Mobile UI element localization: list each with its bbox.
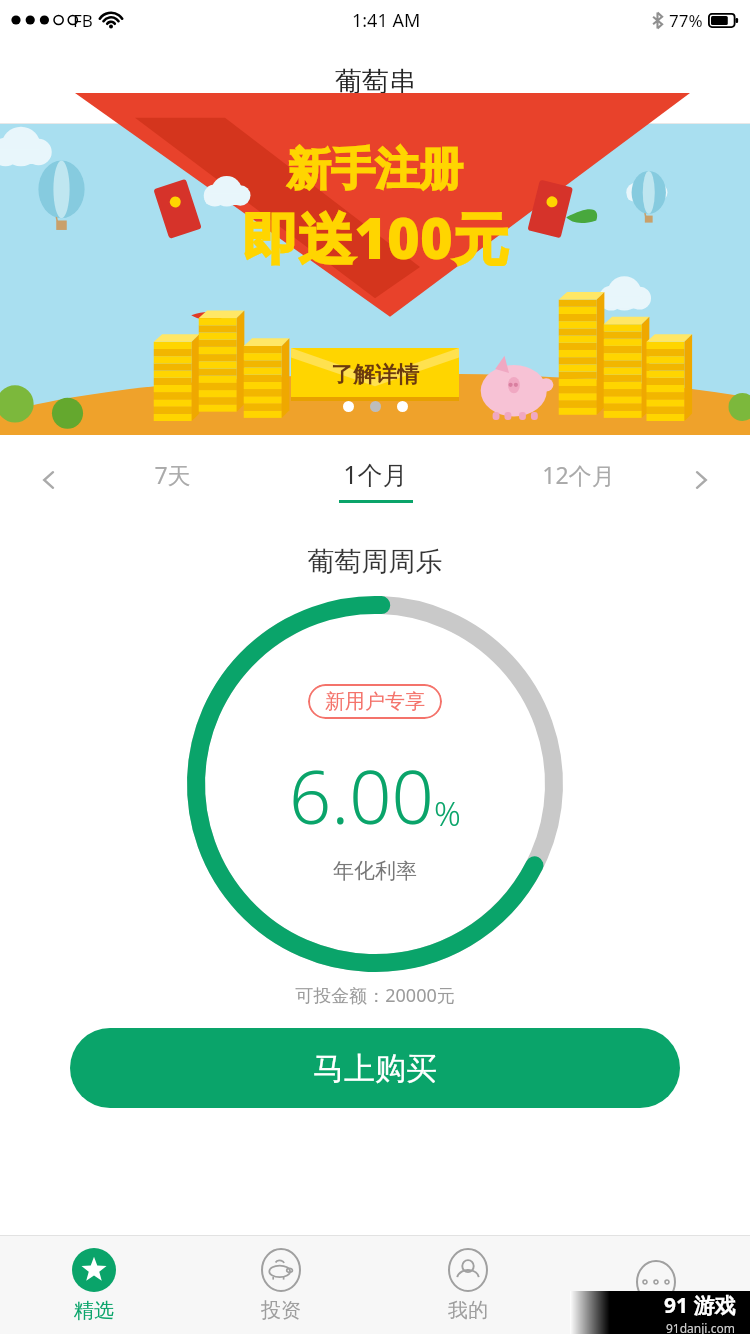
- button[interactable]: 投资: [187, 1236, 374, 1334]
- button[interactable]: More: [562, 1236, 750, 1334]
- staticText: 可投金额：20000元: [0, 983, 750, 1008]
- button[interactable]: 1个月: [274, 457, 477, 503]
- button[interactable]: Next: [680, 459, 722, 501]
- staticText: 葡萄串: [335, 65, 416, 99]
- staticText: 7天: [154, 459, 191, 490]
- staticText: 12个月: [542, 459, 615, 490]
- staticText: 6.00: [289, 745, 434, 846]
- button[interactable]: 7天: [70, 459, 274, 502]
- staticText: 年化利率: [333, 858, 417, 884]
- button[interactable]: 我的: [374, 1236, 562, 1334]
- button[interactable]: 12个月: [477, 459, 680, 502]
- staticText: 1:41 AM: [352, 8, 421, 33]
- staticText: 马上购买: [313, 1049, 437, 1088]
- staticText: FB: [73, 9, 93, 32]
- staticText: 投资: [261, 1298, 301, 1323]
- button[interactable]: Previous: [28, 459, 70, 501]
- button[interactable]: 马上购买: [70, 1028, 680, 1108]
- staticText: 77%: [669, 9, 703, 32]
- staticText: 新手注册: [287, 142, 463, 197]
- staticText: 91danji.com: [666, 1320, 735, 1334]
- staticText: 91 游戏: [664, 1291, 736, 1320]
- staticText: 我的: [448, 1298, 488, 1323]
- staticText: 新用户专享: [325, 689, 425, 714]
- staticText: 即送100元: [242, 199, 509, 275]
- staticText: %: [434, 791, 461, 836]
- staticText: 葡萄周周乐: [0, 545, 750, 579]
- button[interactable]: 了解详情: [291, 348, 459, 401]
- button[interactable]: 精选: [0, 1236, 187, 1334]
- staticText: 精选: [74, 1298, 114, 1323]
- staticText: 1个月: [343, 457, 408, 491]
- staticText: 了解详情: [331, 361, 419, 389]
- button[interactable]: 新手注册: [0, 124, 750, 435]
